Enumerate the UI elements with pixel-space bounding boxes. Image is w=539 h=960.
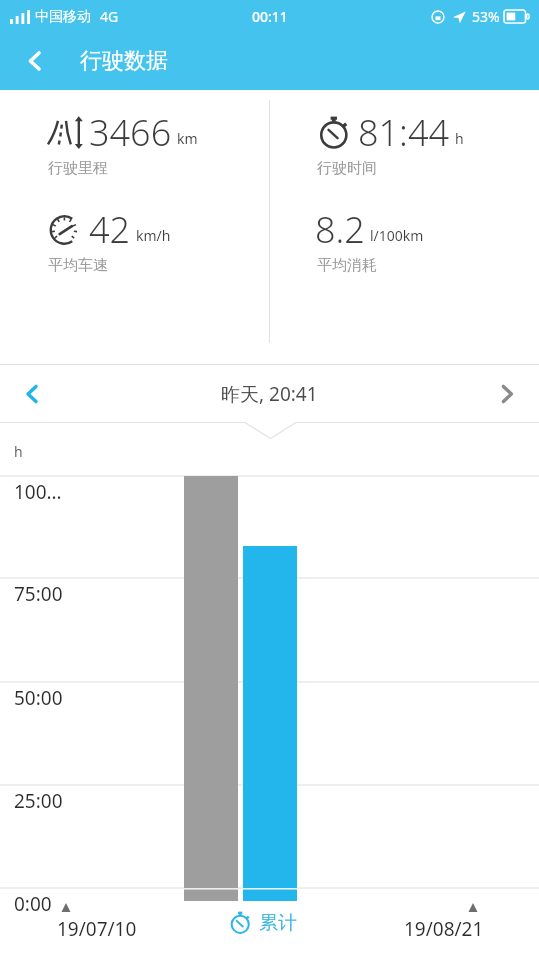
staticText: 50:00 [14,685,63,711]
staticText: 53% [472,7,500,26]
staticText: 平均消耗 [317,256,377,275]
staticText: 昨天, 20:41 [221,381,318,407]
staticText: 行驶时间 [317,159,377,178]
staticText: 25:00 [14,788,63,814]
staticText: h [455,129,464,148]
staticText: h [14,442,23,461]
staticText: 19/08/21 [404,916,484,942]
staticText: 81:44 [358,108,450,157]
staticText: 100… [14,479,62,505]
staticText: 3466 [89,108,172,157]
staticText: 75:00 [14,581,63,607]
button[interactable]: 累计 [228,910,297,936]
button[interactable]: Next [479,366,535,422]
staticText: 中国移动 [35,8,91,26]
staticText: 8.2 [315,205,365,254]
staticText: 行驶数据 [80,47,168,75]
staticText: 4G [100,7,119,26]
button[interactable]: Back [10,36,60,86]
staticText: 0:00 [14,891,52,917]
staticText: 平均车速 [48,256,108,275]
staticText: 19/07/10 [57,916,137,942]
staticText: 行驶里程 [48,159,108,178]
staticText: 累计 [259,911,297,935]
staticText: l/100km [370,226,424,245]
staticText: km [177,129,198,148]
staticText: 42 [89,205,131,254]
staticText: 00:11 [252,7,288,26]
staticText: km/h [136,226,171,245]
button[interactable]: Previous [4,366,60,422]
